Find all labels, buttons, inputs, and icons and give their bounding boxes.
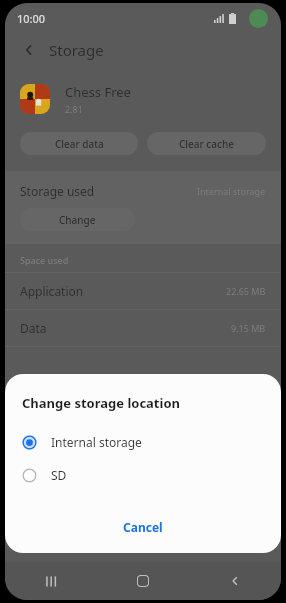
- staticText: Change: [59, 213, 96, 227]
- button[interactable]: Cancel: [107, 513, 179, 541]
- staticText: 2.81: [65, 103, 83, 115]
- button[interactable]: Back: [17, 38, 41, 62]
- staticText: Chess Free: [65, 83, 131, 101]
- staticText: Clear cache: [179, 137, 234, 151]
- button[interactable]: Data: [5, 310, 281, 346]
- staticText: Clear data: [55, 137, 104, 151]
- staticText: Cancel: [123, 519, 163, 535]
- button[interactable]: Home: [97, 562, 189, 600]
- staticText: Data: [20, 320, 47, 336]
- staticText: Storage used: [20, 183, 95, 199]
- button[interactable]: Internal storage: [5, 429, 281, 455]
- staticText: 22.65 MB: [226, 285, 266, 297]
- staticText: Internal storage: [197, 185, 266, 197]
- button[interactable]: Application: [5, 273, 281, 309]
- staticText: Change storage location: [22, 394, 180, 412]
- button[interactable]: Change: [20, 208, 135, 231]
- staticText: Space used: [20, 254, 69, 266]
- button[interactable]: Clear cache: [147, 132, 266, 155]
- staticText: 9.15 MB: [231, 322, 266, 334]
- staticText: Internal storage: [51, 434, 142, 450]
- staticText: SD: [51, 467, 67, 483]
- button[interactable]: Clear data: [20, 132, 138, 155]
- staticText: 10:00: [17, 11, 46, 26]
- staticText: Application: [20, 283, 84, 299]
- button[interactable]: Recents: [5, 562, 97, 600]
- button[interactable]: SD: [5, 462, 281, 488]
- staticText: Storage: [49, 40, 104, 60]
- button[interactable]: Back: [189, 562, 281, 600]
